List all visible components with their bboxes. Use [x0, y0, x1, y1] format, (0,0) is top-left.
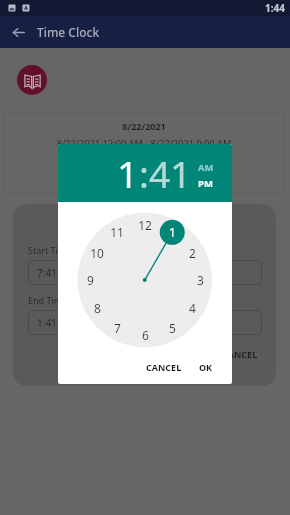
staticText: AM [198, 161, 214, 174]
button[interactable]: 3 [189, 269, 211, 291]
button[interactable]: Back [7, 21, 29, 43]
button[interactable]: AM [198, 161, 214, 174]
button[interactable]: 8/22/2021 [3, 112, 285, 193]
staticText: Start Time [28, 244, 72, 256]
staticText: 6 [142, 327, 149, 343]
staticText: 1 [169, 224, 176, 240]
staticText: CANCEL [222, 348, 258, 360]
button[interactable]: :41 [139, 148, 192, 198]
staticText: End Time [28, 294, 68, 306]
staticText: 11 [110, 224, 124, 240]
button[interactable]: 7 [106, 317, 128, 339]
staticText: 2 [189, 245, 196, 261]
button[interactable]: 5 [161, 317, 183, 339]
staticText: 8 [94, 300, 101, 316]
staticText: CANCEL [146, 361, 182, 373]
button[interactable]: PM [198, 177, 213, 190]
staticText: OK [199, 361, 213, 373]
staticText: 12 [138, 217, 152, 233]
staticText: PM [198, 177, 213, 190]
button[interactable]: CANCEL [140, 356, 188, 378]
button[interactable]: 12 [134, 214, 156, 236]
staticText: Time Clock [37, 24, 100, 40]
button[interactable]: 7:41 AM [28, 260, 262, 285]
button[interactable]: 10 [86, 242, 108, 264]
button[interactable]: 1:41 PM [28, 310, 262, 335]
staticText: 10 [90, 245, 104, 261]
staticText: 7 [114, 320, 121, 336]
button[interactable]: 1 [117, 148, 139, 198]
button[interactable]: 8 [86, 297, 108, 319]
button[interactable]: 4 [181, 297, 203, 319]
button[interactable]: 11 [106, 221, 128, 243]
button[interactable]: 9 [79, 269, 101, 291]
button[interactable]: 2 [181, 242, 203, 264]
staticText: 9 [87, 272, 94, 288]
button[interactable]: Timesheet [17, 65, 47, 95]
staticText: 7:41 AM [37, 266, 75, 280]
staticText: 8/22/2021 [3, 120, 285, 132]
staticText: 1:41 PM [37, 316, 75, 330]
staticText: 4 [189, 300, 196, 316]
staticText: 8/22/2021 12:00 AM - 8/22/2021 9:00 AM [3, 137, 285, 150]
staticText: 1:44 [265, 1, 285, 15]
button[interactable]: 1 [161, 221, 183, 243]
button[interactable]: OK [193, 356, 219, 378]
button[interactable]: 6 [134, 324, 156, 346]
staticText: 3 [197, 272, 204, 288]
button[interactable]: CANCEL [218, 345, 262, 363]
staticText: 5 [169, 320, 176, 336]
